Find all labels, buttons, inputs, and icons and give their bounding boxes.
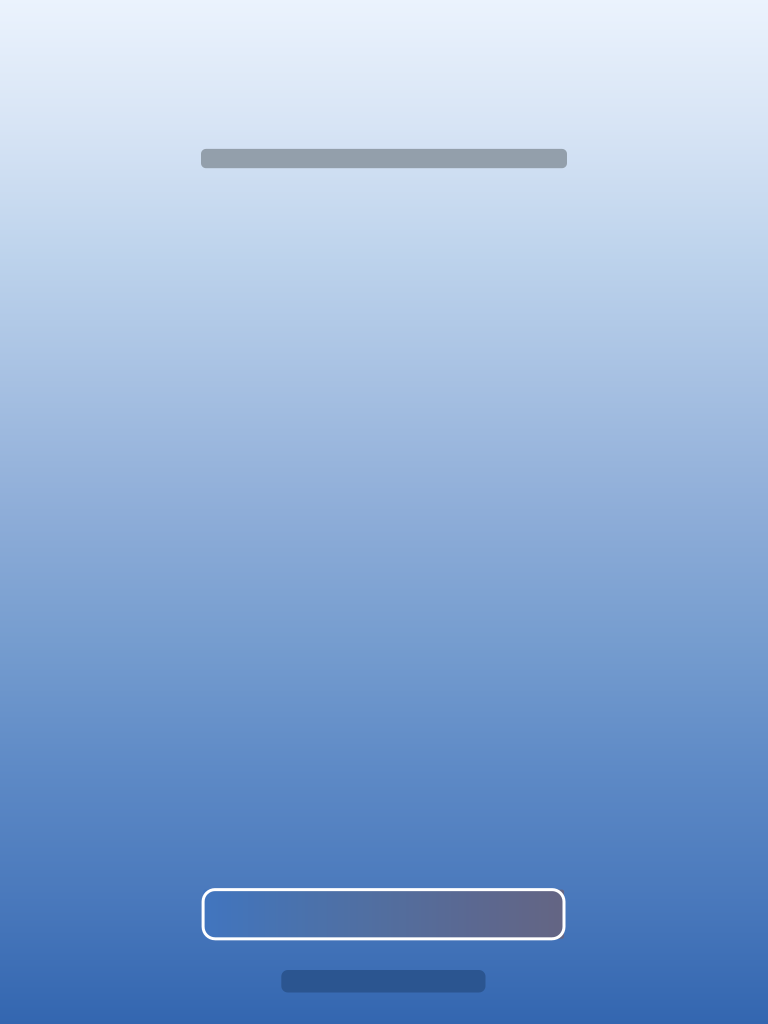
button[interactable]: Continue — [203, 890, 564, 939]
